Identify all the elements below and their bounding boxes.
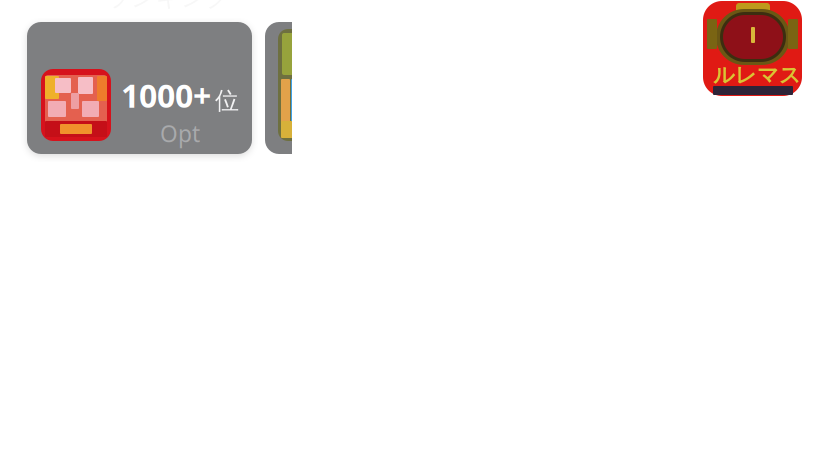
staticText: 位	[215, 86, 239, 115]
staticText: Opt	[160, 118, 200, 149]
button[interactable]: ルレマス	[703, 1, 802, 96]
staticText: ルレマス	[713, 62, 801, 88]
staticText: 1000+	[121, 74, 211, 116]
button[interactable]	[265, 22, 292, 154]
button[interactable]: 1000+	[27, 22, 252, 154]
